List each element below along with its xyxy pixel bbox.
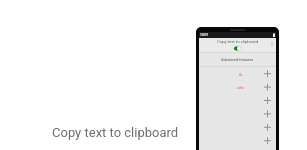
- button[interactable]: Add shortcut: [199, 80, 276, 93]
- staticText: Copy text to clipboard: [52, 125, 179, 140]
- staticText: 10:09: [200, 33, 208, 37]
- staticText: who: [237, 85, 245, 90]
- staticText: Advanced features: [221, 57, 254, 62]
- button[interactable]: Add shortcut: [199, 121, 276, 134]
- button[interactable]: More options: [270, 40, 274, 47]
- button[interactable]: Add shortcut: [199, 67, 276, 80]
- button[interactable]: Add shortcut: [199, 134, 276, 147]
- staticText: fb: [239, 72, 243, 77]
- button[interactable]: Add shortcut: [199, 107, 276, 120]
- button[interactable]: Add shortcut: [199, 94, 276, 107]
- button[interactable]: Copy text to clipboard switch: [234, 46, 242, 51]
- staticText: Copy text to clipboard: [217, 39, 259, 44]
